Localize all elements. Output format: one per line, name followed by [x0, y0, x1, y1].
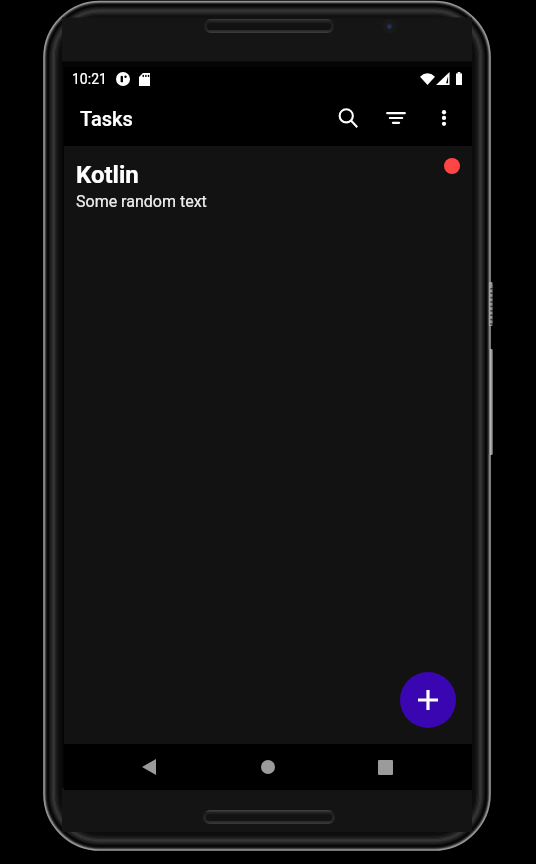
button[interactable]: Back: [125, 744, 173, 790]
staticText: Some random text: [76, 192, 207, 211]
staticText: Tasks: [80, 107, 133, 130]
staticText: 10:21: [72, 71, 107, 87]
button[interactable]: Recents: [361, 744, 409, 790]
button[interactable]: Kotlin: [64, 146, 472, 218]
button[interactable]: Search: [324, 94, 372, 142]
button[interactable]: Filter: [372, 94, 420, 142]
button[interactable]: More options: [420, 94, 468, 142]
button[interactable]: Add task: [400, 672, 456, 728]
button[interactable]: Home: [244, 744, 292, 790]
staticText: Kotlin: [76, 161, 139, 189]
